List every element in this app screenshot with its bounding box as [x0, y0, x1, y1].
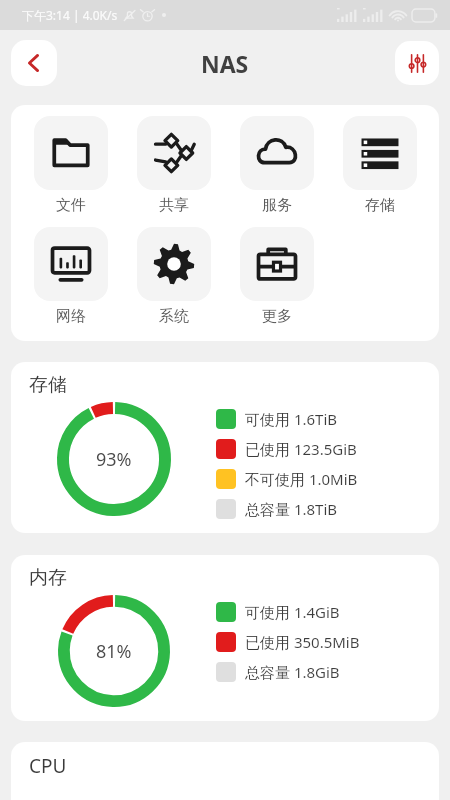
staticText: 已使用 123.5GiB — [245, 439, 357, 459]
staticText: 内存 — [29, 566, 67, 590]
staticText: 网络 — [56, 307, 86, 326]
button[interactable]: 系统 — [122, 225, 225, 332]
staticText: 下午3:14 | 4.0K/s — [22, 7, 118, 23]
staticText: 总容量 1.8TiB — [245, 499, 338, 519]
staticText: 81% — [96, 639, 132, 664]
staticText: CPU — [29, 753, 67, 779]
staticText: 系统 — [159, 307, 189, 326]
button[interactable]: 服务 — [225, 114, 328, 221]
staticText: 不可使用 1.0MiB — [245, 469, 358, 489]
button[interactable]: 文件 — [19, 114, 122, 221]
staticText: 存储 — [365, 196, 395, 215]
button[interactable]: CPU — [11, 742, 439, 800]
staticText: 总容量 1.8GiB — [245, 662, 340, 682]
staticText: 已使用 350.5MiB — [245, 632, 360, 652]
button[interactable]: Back — [11, 40, 57, 86]
staticText: 存储 — [29, 373, 67, 397]
button[interactable]: 网络 — [19, 225, 122, 332]
staticText: 共享 — [159, 196, 189, 215]
staticText: 更多 — [262, 307, 292, 326]
staticText: 服务 — [262, 196, 292, 215]
button[interactable]: 内存 — [11, 555, 439, 721]
button[interactable]: 存储 — [328, 114, 431, 221]
staticText: 文件 — [56, 196, 86, 215]
staticText: 93% — [96, 447, 132, 472]
button[interactable]: Settings — [395, 41, 439, 85]
button[interactable]: 存储 — [11, 362, 439, 533]
staticText: NAS — [201, 48, 249, 79]
staticText: 可使用 1.4GiB — [245, 602, 340, 622]
button[interactable]: 更多 — [225, 225, 328, 332]
button[interactable]: 共享 — [122, 114, 225, 221]
staticText: 可使用 1.6TiB — [245, 409, 338, 429]
